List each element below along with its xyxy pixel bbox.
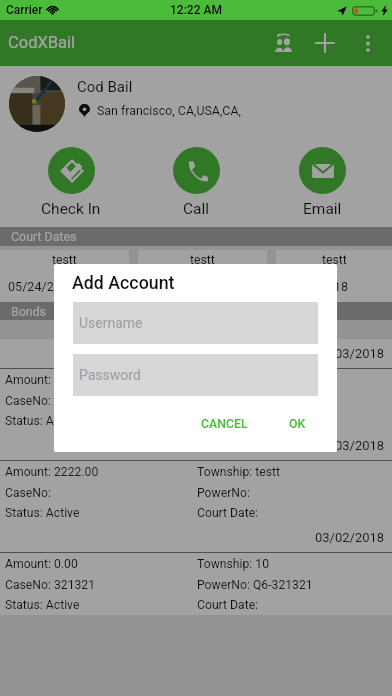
staticText: Password [79,367,141,383]
staticText: Court Date: [197,414,259,428]
button[interactable]: Cod Bail [0,66,392,138]
staticText: OK [289,417,306,431]
staticText: PowerNo: [197,486,250,500]
staticText: 05/24/2018 01:46:5 [8,279,120,294]
staticText: 03/02/2018 [315,530,385,545]
staticText: Township: testt [197,465,281,479]
button[interactable]: Call [141,138,251,227]
button[interactable]: Email [267,138,377,227]
staticText: PowerNo: Q6-321321 [197,394,313,408]
staticText: PowerNo: Q6-321321 [197,578,313,592]
staticText: Add Account [72,272,175,293]
staticText: testt [322,253,347,267]
staticText: 05/24/2018 01:46:5 [143,279,255,294]
staticText: Status: Active [5,506,80,520]
staticText: 12:22 AM [170,3,222,17]
staticText: CaseNo: 321321 [5,394,96,408]
staticText: Court Date: [197,506,259,520]
staticText: CaseNo: [5,486,51,500]
button[interactable]: 03/03/2018 [0,339,392,431]
staticText: Amount: 2222.00 [5,373,99,387]
staticText: Court Dates [11,229,77,244]
staticText: Status: Active [5,414,80,428]
staticText: Amount: 2222.00 [5,465,99,479]
staticText: Carrier [6,3,43,17]
button[interactable]: Contacts [264,20,302,66]
button[interactable]: 05/24/2018 01:46:5 [0,270,392,302]
staticText: CodXBail [8,33,76,52]
staticText: Call [183,200,210,218]
button[interactable]: 03/03/2018 [0,431,392,523]
staticText: Username [79,315,143,331]
staticText: Township: 10 [197,557,270,571]
button[interactable]: Check In [16,138,126,227]
staticText: San francisco, CA,USA,CA, [97,103,241,118]
button[interactable]: Username [73,302,318,344]
staticText: 03/03/2018 [315,438,385,453]
button[interactable]: Password [73,354,318,396]
staticText: CANCEL [201,417,248,431]
button[interactable]: OK [282,411,313,437]
staticText: CaseNo: 321321 [5,578,96,592]
staticText: 05/24/2018 01:46:5 [281,279,392,294]
button[interactable]: Court Dates [0,227,392,246]
staticText: Court Date: [197,598,259,612]
button[interactable]: CANCEL [193,411,256,437]
staticText: 03/03/2018 [315,346,385,361]
staticText: Check In [41,200,101,218]
staticText: Email [303,200,342,218]
staticText: testt [190,253,215,267]
staticText: testt [52,253,77,267]
staticText: Status: Active [5,598,80,612]
button[interactable]: Bonds [0,302,392,320]
staticText: Bonds [11,304,47,319]
button[interactable]: Add [302,20,348,66]
staticText: Cod Bail [77,78,133,96]
button[interactable]: More options [348,20,388,66]
staticText: Amount: 0.00 [5,557,78,571]
button[interactable]: 03/02/2018 [0,523,392,615]
